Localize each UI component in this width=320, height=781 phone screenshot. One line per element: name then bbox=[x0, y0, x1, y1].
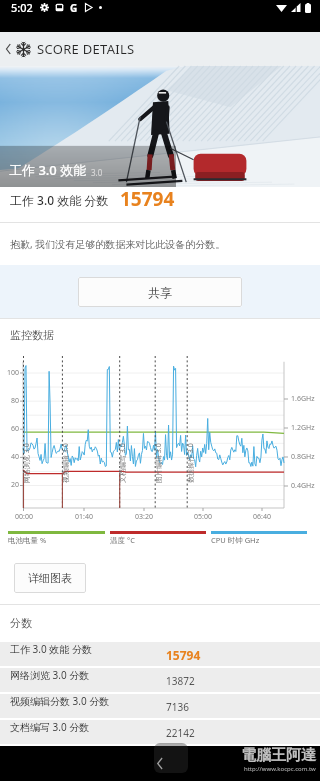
button[interactable]: 详细图表 bbox=[14, 563, 86, 593]
staticText: 05:00 bbox=[194, 512, 212, 522]
staticText: 60 bbox=[11, 424, 20, 434]
staticText: 1.6GHz bbox=[291, 394, 315, 404]
staticText: CPU 时钟 GHz bbox=[211, 535, 260, 545]
button[interactable]: 视频编辑分数 3.0 分数 bbox=[0, 694, 320, 720]
staticText: 工作 3.0 效能 分数 bbox=[10, 192, 109, 208]
button[interactable]: 工作 3.0 效能 分数 bbox=[0, 642, 320, 668]
staticText: 100 bbox=[7, 368, 20, 378]
staticText: 文档编写 3.0 分数 bbox=[10, 720, 90, 734]
staticText: 0.4GHz bbox=[291, 481, 315, 491]
staticText: 20 bbox=[11, 480, 20, 490]
staticText: http://www.kocpc.com.tw bbox=[244, 765, 316, 773]
staticText: 共享 bbox=[148, 285, 172, 300]
staticText: 文档编写 3.0 bbox=[118, 443, 128, 483]
staticText: 電腦王阿達 bbox=[241, 746, 316, 765]
staticText: 15794 bbox=[120, 186, 175, 212]
staticText: 网络浏览 3.0 分数 bbox=[10, 668, 90, 682]
staticText: 详细图表 bbox=[28, 571, 72, 585]
staticText: 数据操作 3.0 bbox=[186, 443, 196, 483]
staticText: 15794 bbox=[166, 647, 201, 663]
staticText: 7136 bbox=[166, 700, 189, 714]
staticText: 40 bbox=[11, 452, 20, 462]
button[interactable]: Back bbox=[141, 746, 179, 781]
staticText: 0.8GHz bbox=[291, 452, 315, 462]
staticText: SCORE DETAILS bbox=[37, 40, 135, 58]
staticText: 电池电量 % bbox=[8, 535, 47, 545]
staticText: 视频编辑分数 3.0 分数 bbox=[10, 694, 110, 708]
staticText: 03:20 bbox=[135, 512, 153, 522]
staticText: 温度 °C bbox=[110, 535, 135, 545]
staticText: 工作 3.0 效能 bbox=[9, 161, 87, 179]
staticText: 图片编辑 3.0 bbox=[154, 443, 164, 483]
button[interactable]: 网络浏览 3.0 分数 bbox=[0, 668, 320, 694]
staticText: 3.0 bbox=[91, 167, 103, 178]
staticText: 01:40 bbox=[75, 512, 93, 522]
staticText: 抱歉, 我们没有足够的数据来对比此设备的分数。 bbox=[10, 237, 226, 251]
button[interactable]: Back bbox=[0, 32, 16, 66]
staticText: 80 bbox=[11, 396, 20, 406]
staticText: 13872 bbox=[166, 674, 195, 688]
staticText: 工作 3.0 效能 分数 bbox=[10, 642, 92, 656]
staticText: 00:00 bbox=[15, 512, 33, 522]
staticText: 22142 bbox=[166, 726, 195, 740]
staticText: 监控数据 bbox=[10, 328, 54, 342]
staticText: 5:02 bbox=[11, 0, 33, 15]
staticText: 分数 bbox=[10, 616, 32, 630]
staticText: 网络浏览 3.0 bbox=[22, 443, 32, 483]
button[interactable]: 共享 bbox=[78, 277, 242, 307]
staticText: G bbox=[70, 1, 78, 15]
staticText: 1.2GHz bbox=[291, 423, 315, 433]
button[interactable]: 文档编写 3.0 分数 bbox=[0, 720, 320, 746]
staticText: 06:40 bbox=[253, 512, 271, 522]
staticText: 视频编辑 3.0 bbox=[61, 443, 71, 483]
